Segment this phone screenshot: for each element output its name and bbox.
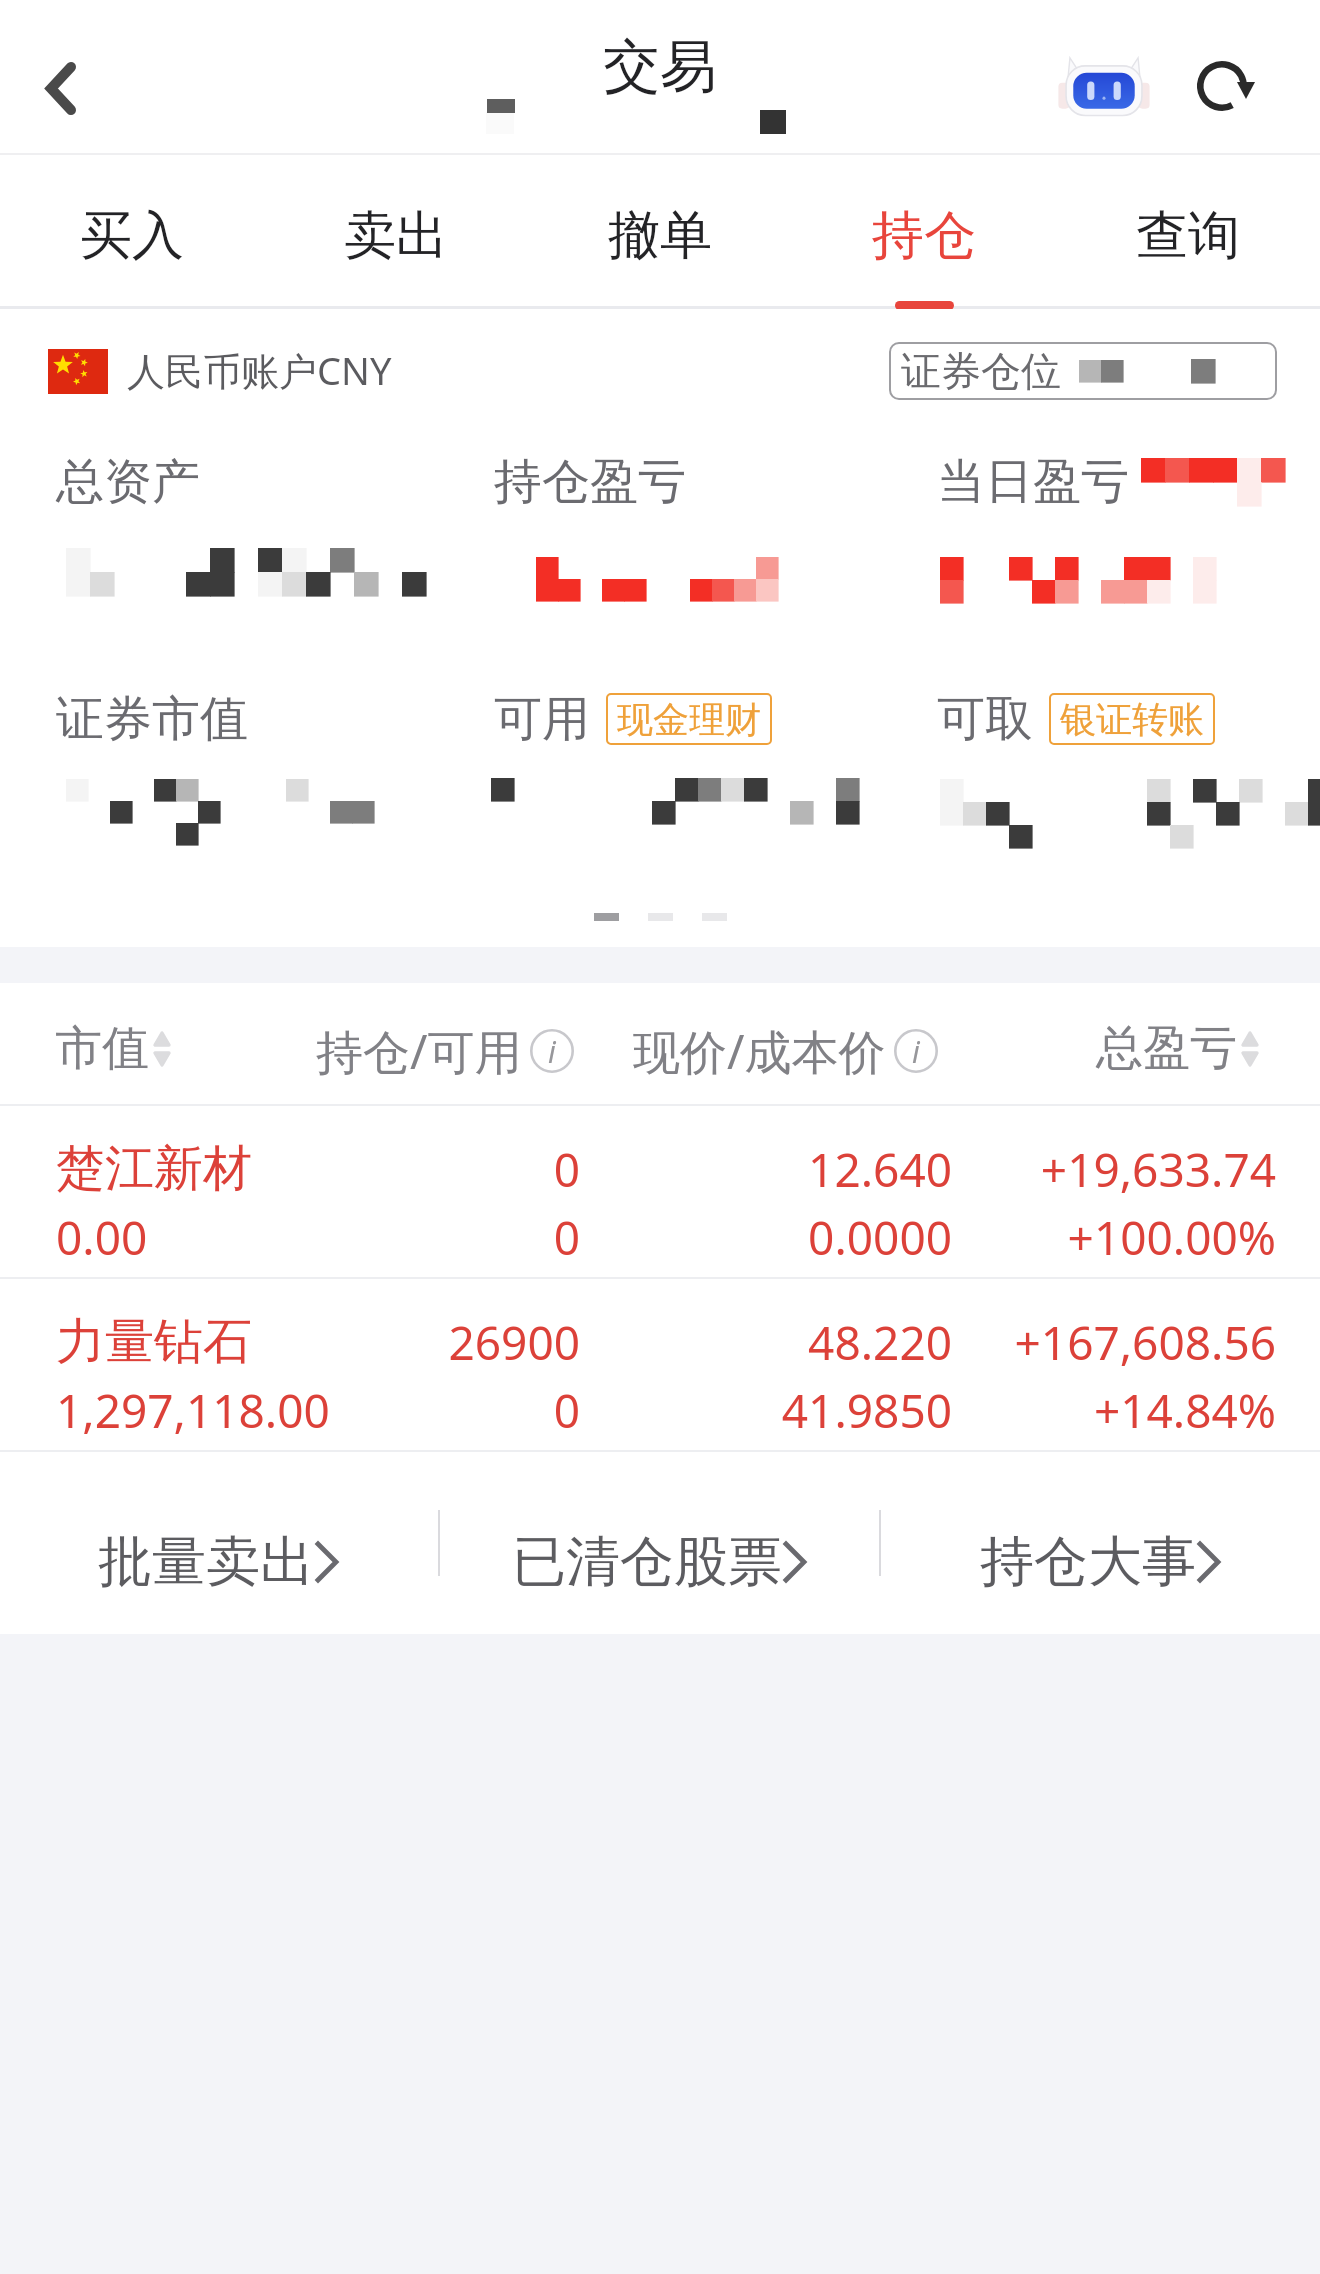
staticText: 买入: [80, 203, 184, 269]
staticText: 持仓/可用: [316, 1019, 522, 1083]
button[interactable]: 力量钻石: [0, 1279, 1320, 1452]
button[interactable]: 银证转账: [1049, 693, 1215, 745]
button[interactable]: 证券仓位: [889, 342, 1277, 400]
staticText: 证券仓位: [901, 346, 1061, 396]
staticText: 1,297,118.00: [56, 1379, 330, 1442]
staticText: 0.00: [56, 1206, 148, 1269]
button[interactable]: 持仓: [792, 155, 1056, 309]
button[interactable]: Refresh: [1178, 43, 1276, 133]
staticText: 0: [0, 1206, 580, 1269]
staticText: +167,608.56: [0, 1311, 1276, 1374]
button[interactable]: 人民币账户CNY: [48, 337, 392, 405]
staticText: 卖出: [344, 203, 448, 269]
staticText: +100.00%: [0, 1206, 1276, 1269]
staticText: 银证转账: [1060, 697, 1204, 742]
staticText: 证券市值: [56, 689, 248, 749]
staticText: 可用: [494, 689, 590, 749]
button[interactable]: 楚江新材: [0, 1106, 1320, 1279]
button[interactable]: Back: [16, 43, 106, 133]
staticText: 市值: [55, 1019, 149, 1078]
staticText: 总盈亏: [1096, 1019, 1237, 1078]
staticText: 持仓盈亏: [494, 452, 686, 512]
staticText: 0: [0, 1379, 580, 1442]
staticText: 0: [0, 1138, 580, 1201]
button[interactable]: 已清仓股票: [440, 1452, 879, 1634]
staticText: 现金理财: [617, 697, 761, 742]
staticText: 可取: [937, 689, 1033, 749]
staticText: 交易: [603, 31, 717, 103]
button[interactable]: 卖出: [264, 155, 528, 309]
staticText: +14.84%: [0, 1379, 1276, 1442]
button[interactable]: 买入: [0, 155, 264, 309]
staticText: 持仓: [872, 203, 976, 269]
staticText: 人民币账户CNY: [127, 344, 392, 396]
staticText: 已清仓股票: [512, 1528, 782, 1596]
staticText: 查询: [1136, 203, 1240, 269]
staticText: 12.640: [0, 1138, 952, 1201]
staticText: i: [912, 1031, 920, 1072]
button[interactable]: 查询: [1056, 155, 1320, 309]
staticText: 26900: [0, 1311, 580, 1374]
staticText: 0.0000: [0, 1206, 952, 1269]
staticText: i: [548, 1031, 556, 1072]
staticText: 现价/成本价: [633, 1019, 886, 1083]
button[interactable]: 持仓大事: [881, 1452, 1320, 1634]
staticText: 48.220: [0, 1311, 952, 1374]
button[interactable]: AI assistant: [1036, 40, 1172, 134]
button[interactable]: 现金理财: [606, 693, 772, 745]
staticText: 41.9850: [0, 1379, 952, 1442]
staticText: 批量卖出: [98, 1528, 314, 1596]
staticText: 撤单: [608, 203, 712, 269]
staticText: 楚江新材: [56, 1138, 252, 1200]
staticText: 力量钻石: [56, 1311, 252, 1373]
staticText: 当日盈亏: [937, 452, 1129, 512]
staticText: 总资产: [56, 452, 200, 512]
button[interactable]: 批量卖出: [0, 1452, 438, 1634]
staticText: +19,633.74: [0, 1138, 1276, 1201]
staticText: 持仓大事: [980, 1528, 1196, 1596]
button[interactable]: 撤单: [528, 155, 792, 309]
